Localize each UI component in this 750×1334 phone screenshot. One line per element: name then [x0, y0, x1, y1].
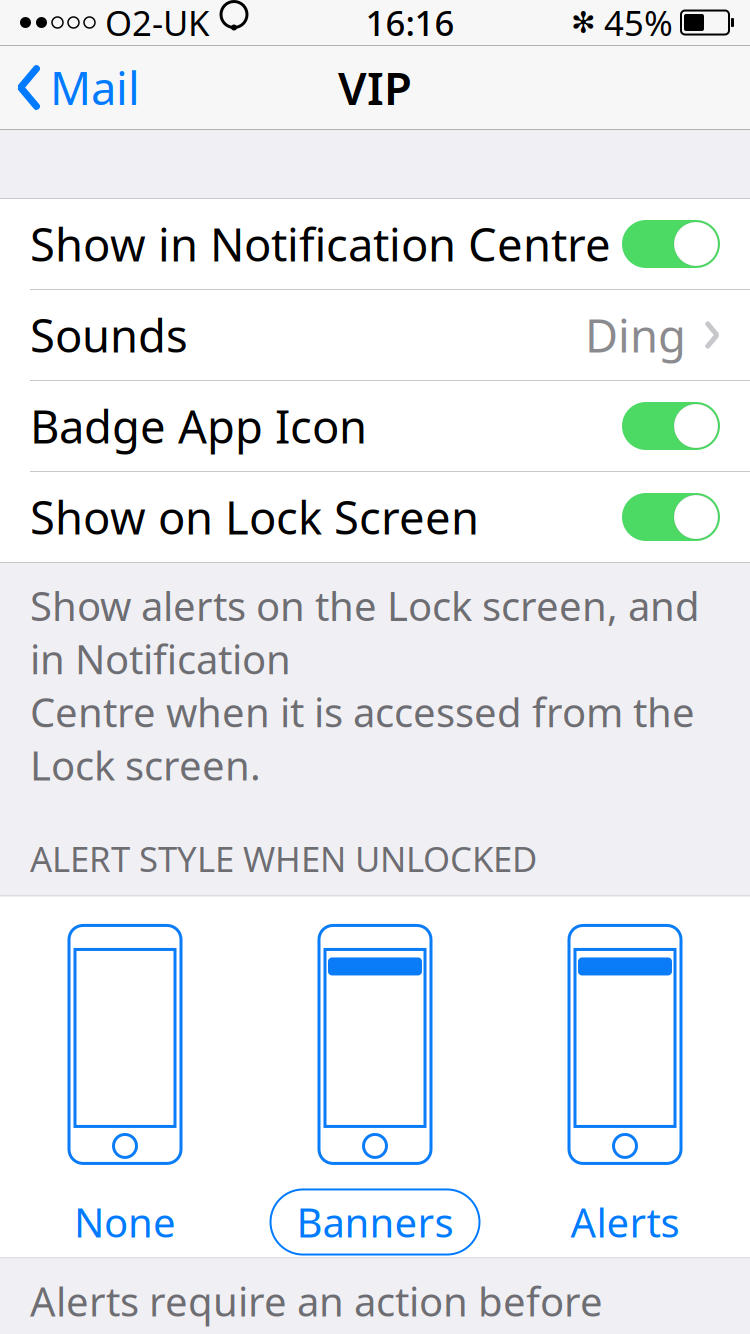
staticText: Mail [50, 57, 140, 118]
staticText: 16:16 [365, 0, 454, 45]
button[interactable]: Show in Notification Centre [0, 199, 750, 289]
staticText: Ding [585, 305, 686, 365]
button[interactable]: Sounds [0, 290, 750, 380]
staticText: O2-UK [105, 0, 209, 45]
staticText: Alerts [570, 1195, 679, 1248]
staticText: Centre when it is accessed from the Lock… [30, 685, 695, 791]
staticText: ✻ [571, 6, 596, 39]
staticText: Sounds [30, 305, 188, 365]
staticText: VIP [338, 57, 412, 118]
staticText: Show on Lock Screen [30, 487, 479, 547]
staticText: Badge App Icon [30, 396, 367, 456]
button[interactable]: Badge App Icon [0, 381, 750, 471]
staticText: Alerts require an action before proceedi… [30, 1274, 603, 1334]
staticText: Banners [296, 1195, 453, 1248]
staticText: None [74, 1195, 176, 1248]
button[interactable]: Mail [0, 47, 140, 128]
staticText: ALERT STYLE WHEN UNLOCKED [30, 835, 537, 881]
button[interactable]: Alerts [500, 896, 750, 1257]
button[interactable]: Show on Lock Screen [0, 472, 750, 562]
staticText: 45% [604, 0, 673, 45]
button[interactable]: Banners [250, 896, 500, 1257]
staticText: Show alerts on the Lock screen, and in N… [30, 579, 700, 685]
staticText: Show in Notification Centre [30, 214, 611, 274]
button[interactable]: None [0, 896, 250, 1257]
